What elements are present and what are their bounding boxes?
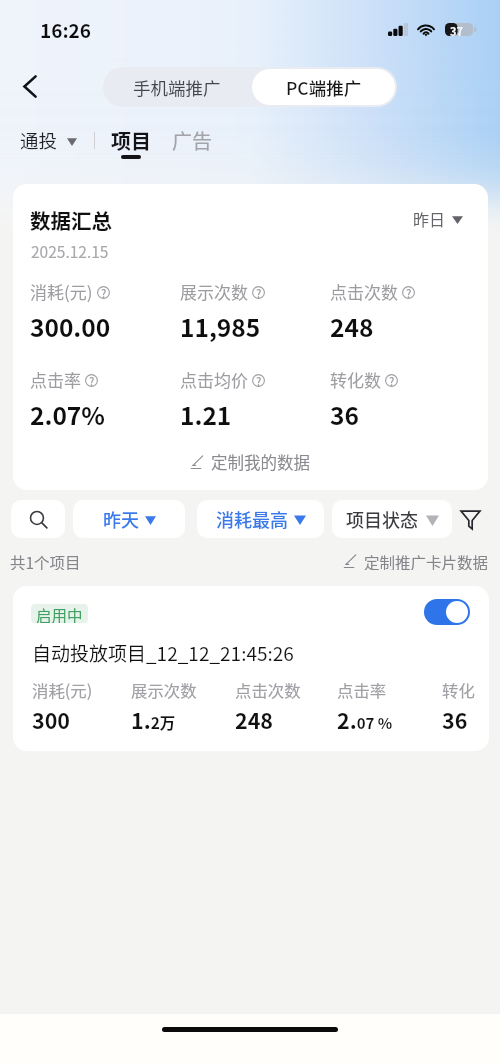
- staticText: ?: [256, 373, 262, 386]
- staticText: 数据汇总: [30, 205, 112, 235]
- staticText: 16:26: [40, 16, 92, 44]
- button[interactable]: 定制我的数据: [191, 448, 310, 476]
- staticText: 2025.12.15: [31, 240, 109, 262]
- staticText: 展示次数: [180, 279, 248, 304]
- staticText: 36: [330, 397, 359, 432]
- button[interactable]: 项目状态: [332, 500, 452, 538]
- staticText: 广告: [172, 126, 212, 155]
- staticText: 共1个项目: [10, 551, 81, 570]
- button[interactable]: Filter: [460, 509, 481, 530]
- staticText: 消耗(元): [32, 678, 93, 702]
- staticText: 点击率: [337, 678, 387, 702]
- staticText: 手机端推广: [133, 75, 221, 100]
- staticText: 2.07 %: [337, 704, 393, 735]
- staticText: 展示次数: [131, 678, 197, 702]
- staticText: 300.00: [30, 309, 111, 344]
- staticText: ?: [389, 373, 395, 386]
- staticText: 自动投放项目_12_12_21:45:26: [32, 639, 294, 667]
- button[interactable]: 手机端推广: [103, 67, 250, 107]
- button[interactable]: Back: [13, 69, 47, 103]
- staticText: 37: [450, 23, 463, 36]
- button[interactable]: 消耗最高: [197, 500, 324, 538]
- staticText: 248: [235, 704, 274, 735]
- staticText: 点击率: [30, 367, 81, 392]
- staticText: ?: [89, 373, 95, 386]
- staticText: 项目状态: [346, 506, 418, 532]
- staticText: 定制我的数据: [211, 450, 310, 474]
- button[interactable]: 通投: [20, 127, 77, 154]
- staticText: 点击均价: [180, 367, 248, 392]
- staticText: 36: [442, 704, 468, 735]
- staticText: 昨天: [103, 506, 139, 532]
- button[interactable]: 广告: [172, 126, 212, 155]
- staticText: ?: [256, 285, 262, 298]
- staticText: 项目: [111, 126, 151, 155]
- staticText: 转化: [442, 678, 475, 702]
- staticText: ?: [406, 285, 412, 298]
- staticText: 2.07%: [30, 397, 105, 432]
- staticText: 11,985: [180, 309, 261, 344]
- staticText: 消耗最高: [216, 506, 288, 532]
- staticText: 启用中: [36, 604, 83, 623]
- staticText: 消耗(元): [30, 279, 93, 304]
- staticText: 昨日: [413, 207, 446, 230]
- staticText: 点击次数: [330, 279, 398, 304]
- staticText: 248: [330, 309, 374, 344]
- staticText: 通投: [20, 127, 58, 154]
- button[interactable]: 项目: [111, 126, 151, 159]
- button[interactable]: 昨日: [413, 207, 463, 230]
- button[interactable]: PC端推广: [252, 69, 395, 105]
- button[interactable]: Toggle enabled: [424, 599, 470, 625]
- button[interactable]: Search: [11, 500, 65, 538]
- staticText: 1.2万: [131, 704, 176, 735]
- staticText: 300: [32, 704, 71, 735]
- button[interactable]: 昨天: [73, 500, 185, 538]
- button[interactable]: 定制推广卡片数据: [344, 551, 489, 570]
- staticText: 1.21: [180, 397, 232, 432]
- staticText: 点击次数: [235, 678, 301, 702]
- staticText: ?: [101, 285, 107, 298]
- staticText: 定制推广卡片数据: [364, 551, 489, 570]
- staticText: 转化数: [330, 367, 381, 392]
- staticText: PC端推广: [286, 75, 362, 100]
